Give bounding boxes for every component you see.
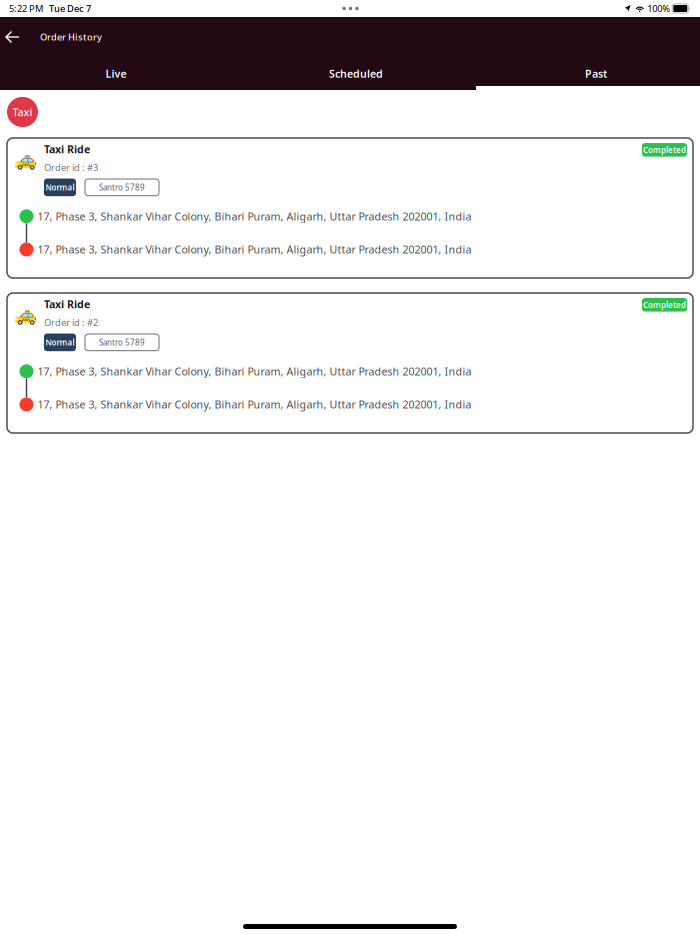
staticText: 🚕 (14, 304, 37, 325)
button[interactable]: Past (476, 61, 700, 90)
staticText: Completed (643, 299, 686, 310)
staticText: 17, Phase 3, Shankar Vihar Colony, Bihar… (37, 364, 471, 378)
button[interactable]: Completed (7, 138, 693, 278)
button[interactable]: Taxi (7, 97, 38, 127)
staticText: Order id : #2 (44, 316, 98, 329)
staticText: Santro 5789 (99, 337, 145, 348)
staticText: Scheduled (329, 66, 383, 81)
staticText: Taxi Ride (44, 297, 90, 311)
button[interactable]: Completed (7, 293, 693, 433)
button[interactable]: Live (0, 61, 236, 90)
button[interactable]: Back (0, 15, 25, 63)
staticText: 🚕 (14, 149, 37, 170)
staticText: Past (585, 66, 607, 81)
staticText: 17, Phase 3, Shankar Vihar Colony, Bihar… (37, 209, 471, 223)
staticText: Santro 5789 (99, 182, 145, 193)
staticText: 17, Phase 3, Shankar Vihar Colony, Bihar… (37, 397, 471, 411)
staticText: Normal (45, 182, 74, 193)
staticText: 5:22 PM (9, 2, 43, 15)
staticText: Normal (45, 337, 74, 348)
staticText: Tue Dec 7 (43, 2, 91, 15)
staticText: Order id : #3 (44, 161, 98, 174)
staticText: Live (105, 66, 126, 81)
staticText: Taxi (12, 105, 32, 119)
staticText: Taxi Ride (44, 142, 90, 156)
staticText: 100% (647, 2, 670, 15)
staticText: Order History (40, 31, 102, 43)
staticText: 17, Phase 3, Shankar Vihar Colony, Bihar… (37, 242, 471, 256)
button[interactable]: Scheduled (236, 61, 476, 90)
staticText: Completed (643, 144, 686, 155)
